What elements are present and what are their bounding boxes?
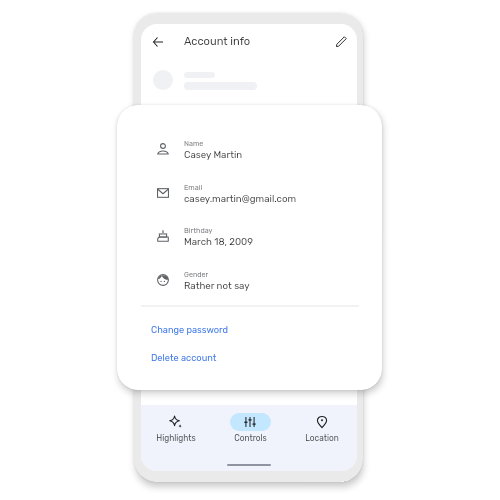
staticText: Birthday	[184, 226, 213, 235]
button[interactable]: Email	[117, 177, 382, 218]
button[interactable]: Controls	[221, 413, 279, 443]
staticText: Rather not say	[184, 280, 250, 291]
button[interactable]: Delete account	[141, 347, 359, 367]
staticText: casey.martin@gmail.com	[184, 193, 297, 204]
button[interactable]: Name	[117, 133, 382, 174]
button[interactable]: Gender	[117, 264, 382, 305]
staticText: Gender	[184, 270, 209, 279]
staticText: Change password	[151, 324, 228, 335]
button[interactable]: Location	[293, 413, 351, 443]
button[interactable]: Change password	[141, 319, 359, 339]
staticText: Email	[184, 183, 203, 192]
button[interactable]: Back	[145, 29, 171, 55]
staticText: Casey Martin	[184, 149, 243, 160]
button[interactable]: Birthday	[117, 220, 382, 261]
button[interactable]: Edit	[328, 28, 354, 54]
staticText: Delete account	[151, 352, 217, 363]
staticText: Account info	[184, 35, 251, 48]
staticText: Highlights	[156, 433, 196, 443]
staticText: Location	[305, 433, 339, 443]
staticText: Name	[184, 139, 204, 148]
button[interactable]: Highlights	[147, 413, 205, 443]
staticText: March 18, 2009	[184, 236, 253, 247]
staticText: Controls	[234, 433, 267, 443]
